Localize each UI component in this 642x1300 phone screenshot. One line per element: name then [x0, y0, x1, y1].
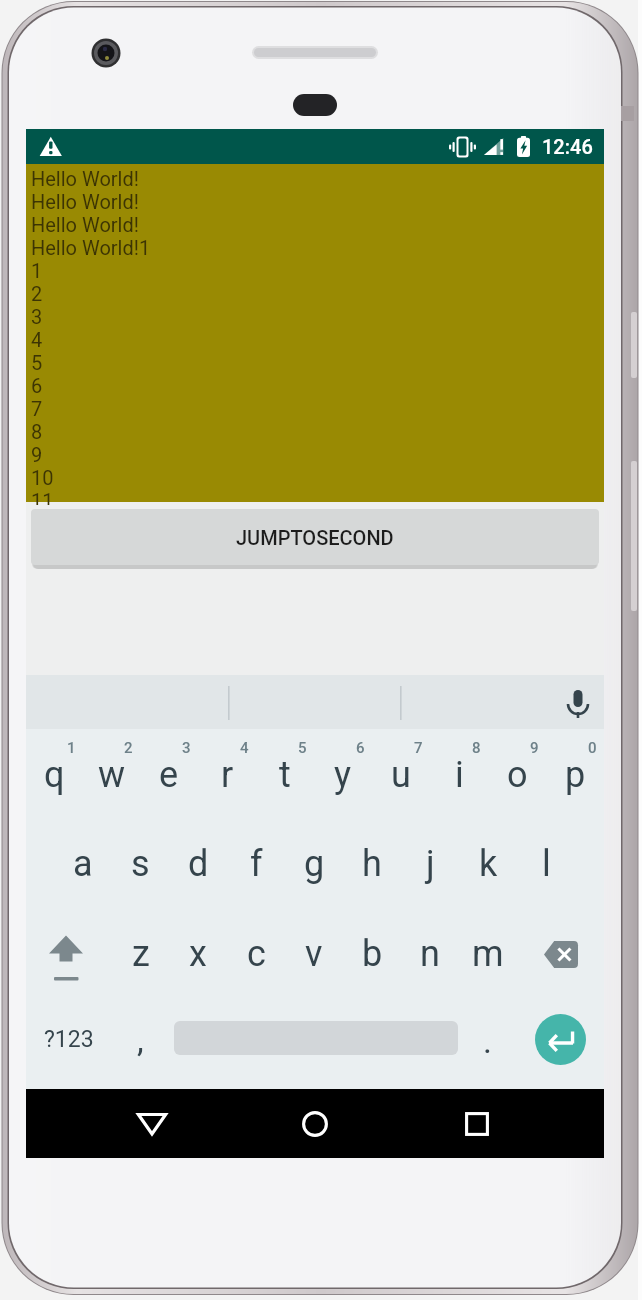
staticText: 9 [530, 739, 539, 757]
staticText: 7 [31, 397, 43, 420]
button[interactable]: v [285, 909, 343, 999]
button[interactable]: . [464, 999, 512, 1089]
button[interactable]: j [401, 819, 459, 909]
staticText: 9 [31, 443, 43, 466]
button[interactable]: Backspace [517, 909, 604, 999]
button[interactable]: k [459, 819, 517, 909]
button[interactable]: 1 [26, 729, 83, 819]
button[interactable]: x [169, 909, 227, 999]
staticText: 6 [31, 374, 43, 397]
staticText: m [472, 933, 504, 975]
button[interactable]: 9 [488, 729, 546, 819]
staticText: 2 [124, 739, 133, 757]
staticText: 0 [588, 739, 597, 757]
button[interactable]: s [111, 819, 169, 909]
button[interactable]: 6 [314, 729, 372, 819]
button[interactable]: 3 [140, 729, 198, 819]
staticText: 11 [31, 489, 54, 505]
staticText: . [483, 1021, 492, 1061]
button[interactable]: 8 [430, 729, 488, 819]
staticText: 4 [31, 328, 43, 351]
staticText: f [250, 843, 263, 885]
staticText: n [420, 933, 440, 975]
staticText: d [188, 843, 209, 885]
button[interactable]: 2 [83, 729, 140, 819]
button[interactable]: Recents [447, 1089, 507, 1158]
staticText: c [247, 933, 266, 975]
staticText: r [221, 754, 234, 796]
staticText: w [98, 754, 126, 796]
staticText: 5 [31, 351, 43, 374]
button[interactable]: l [517, 819, 575, 909]
staticText: y [334, 754, 352, 796]
button[interactable]: 4 [198, 729, 256, 819]
staticText: JUMPTOSECOND [236, 526, 394, 549]
staticText: 1 [31, 259, 43, 282]
button[interactable]: c [227, 909, 285, 999]
staticText: 10 [31, 466, 54, 489]
button[interactable]: Shift [26, 909, 112, 999]
staticText: o [507, 754, 528, 796]
staticText: ?123 [44, 1026, 94, 1053]
staticText: Hello World! [31, 167, 139, 190]
staticText: k [479, 843, 498, 885]
button[interactable]: z [112, 909, 169, 999]
staticText: 3 [31, 305, 43, 328]
staticText: 2 [31, 282, 43, 305]
staticText: l [542, 843, 551, 885]
staticText: h [362, 843, 382, 885]
button[interactable]: JUMPTOSECOND [31, 509, 599, 565]
staticText: s [131, 843, 150, 885]
staticText: j [426, 843, 435, 885]
staticText: 1 [67, 739, 76, 757]
staticText: 7 [414, 739, 423, 757]
button[interactable]: Home [285, 1089, 345, 1158]
button[interactable]: , [114, 999, 162, 1089]
staticText: 4 [240, 739, 249, 757]
button[interactable]: Enter [516, 999, 604, 1089]
staticText: v [305, 933, 323, 975]
button[interactable]: 0 [546, 729, 604, 819]
staticText: b [362, 933, 383, 975]
staticText: q [44, 754, 65, 796]
staticText: 12:46 [542, 135, 593, 158]
button[interactable]: a [54, 819, 111, 909]
staticText: Hello World!1 [31, 236, 151, 259]
button[interactable]: Space [166, 999, 466, 1089]
staticText: e [159, 754, 179, 796]
staticText: Hello World! [31, 213, 139, 236]
staticText: 8 [472, 739, 481, 757]
staticText: t [279, 754, 291, 796]
button[interactable]: h [343, 819, 401, 909]
button[interactable]: ?123 [32, 999, 106, 1089]
staticText: , [137, 1020, 144, 1060]
staticText: 5 [298, 739, 307, 757]
staticText: p [565, 754, 586, 796]
staticText: a [73, 843, 93, 885]
staticText: z [132, 933, 150, 975]
staticText: 8 [31, 420, 43, 443]
staticText: x [189, 933, 207, 975]
button[interactable]: g [285, 819, 343, 909]
staticText: i [455, 754, 464, 796]
button[interactable]: n [401, 909, 459, 999]
staticText: u [391, 754, 411, 796]
button[interactable]: b [343, 909, 401, 999]
button[interactable]: Back [122, 1089, 182, 1158]
staticText: Hello World! [31, 190, 139, 213]
button[interactable]: d [169, 819, 227, 909]
staticText: 3 [182, 739, 191, 757]
button[interactable]: 5 [256, 729, 314, 819]
staticText: 6 [356, 739, 365, 757]
staticText: g [304, 843, 325, 885]
button[interactable]: 7 [372, 729, 430, 819]
button[interactable]: f [227, 819, 285, 909]
button[interactable]: m [459, 909, 517, 999]
